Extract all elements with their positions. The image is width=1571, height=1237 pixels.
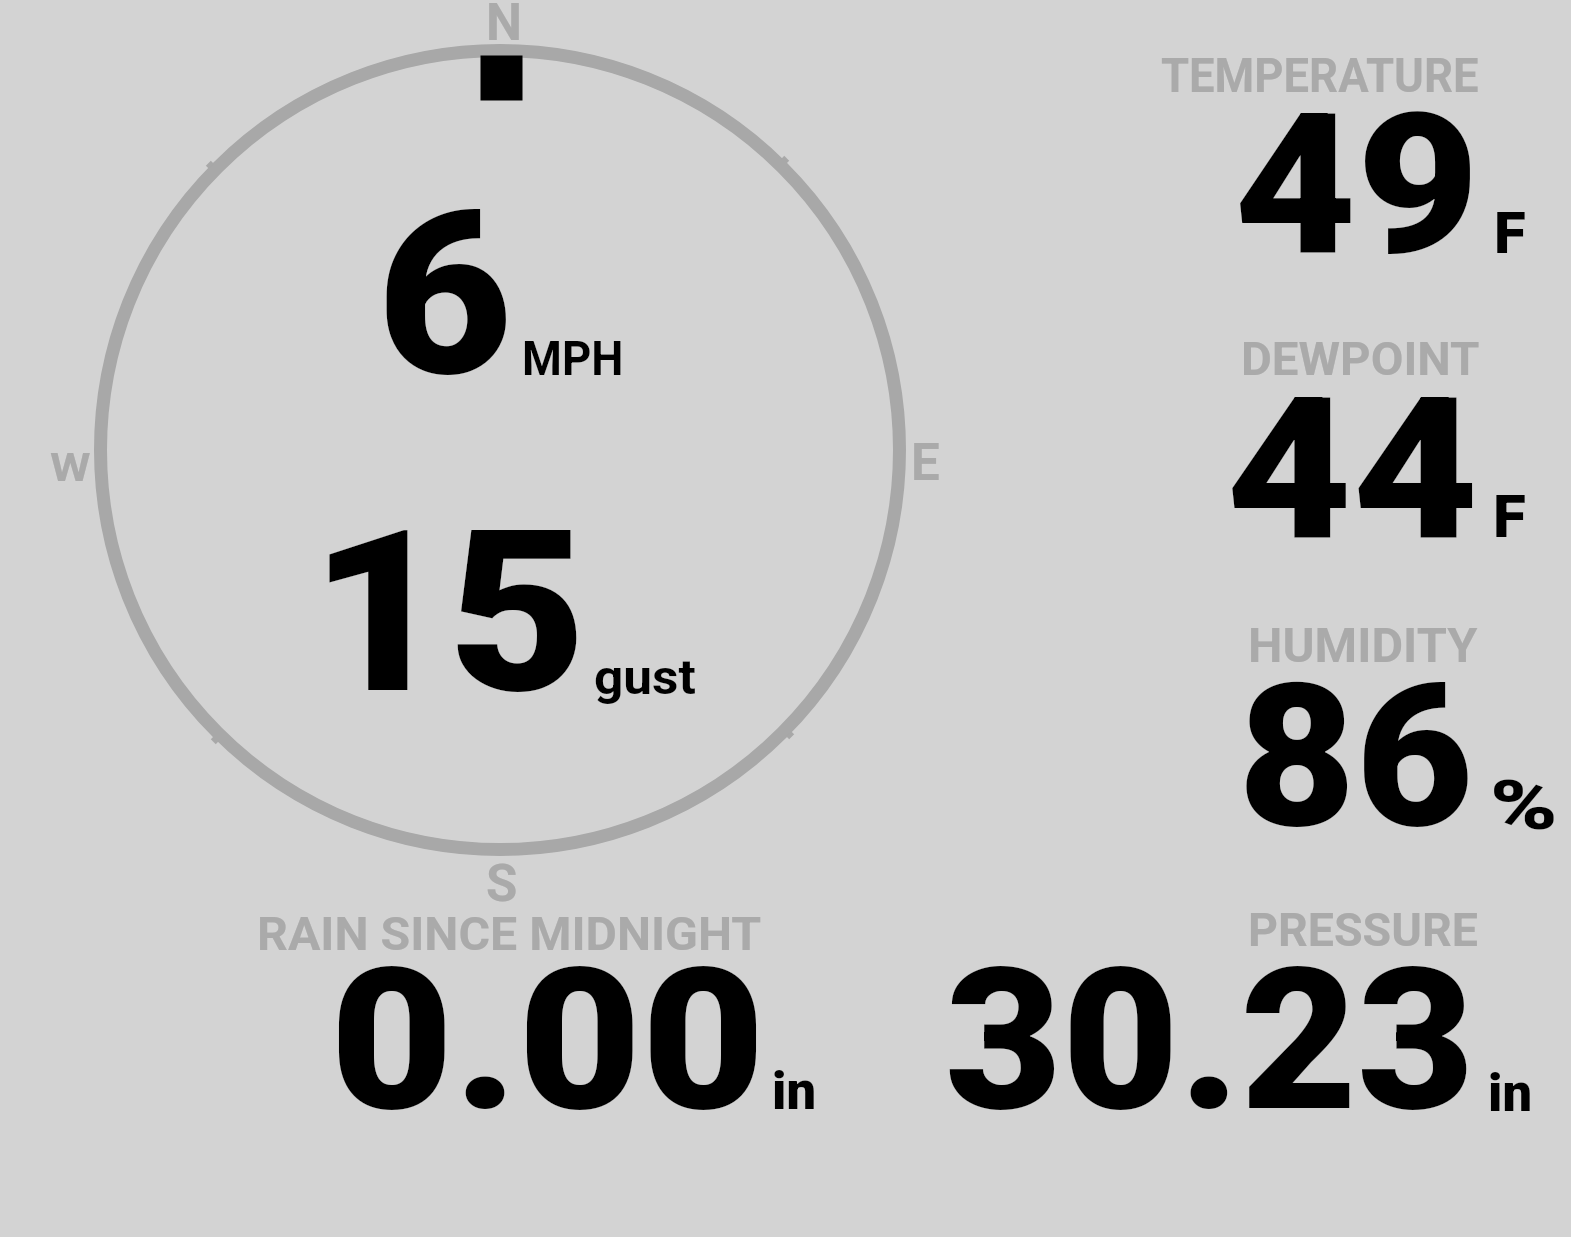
staticText: RAIN SINCE MIDNIGHT [257,906,762,961]
button[interactable]: Temperature 49 degrees Fahrenheit [1100,40,1560,320]
staticText: gust [594,649,697,705]
staticText: E [911,433,940,493]
staticText: in [772,1062,816,1122]
staticText: % [1490,766,1558,846]
staticText: F [1494,199,1526,267]
button[interactable]: Wind 6 miles per hour, gusting 15, from … [60,10,940,890]
staticText: N [486,0,522,53]
staticText: HUMIDITY [1248,617,1477,673]
staticText: 0.00 [330,926,766,1156]
button[interactable]: Rain since midnight 0.00 inches [230,895,830,1125]
staticText: TEMPERATURE [1161,47,1478,103]
staticText: W [50,446,91,491]
button[interactable]: Humidity 86 percent [1100,610,1560,895]
staticText: 15 [310,482,587,745]
button[interactable]: Pressure 30.23 inches [900,895,1550,1125]
staticText: MPH [522,330,624,387]
staticText: 86 [1238,640,1474,873]
staticText: 44 [1226,355,1479,586]
staticText: in [1488,1064,1532,1124]
staticText: 49 [1234,71,1480,300]
staticText: DEWPOINT [1241,331,1480,386]
staticText: S [486,854,518,914]
staticText: 30.23 [945,926,1474,1156]
staticText: PRESSURE [1248,902,1479,957]
staticText: 6 [377,162,513,428]
button[interactable]: Dew point 44 degrees Fahrenheit [1100,325,1560,610]
staticText: F [1493,481,1526,551]
